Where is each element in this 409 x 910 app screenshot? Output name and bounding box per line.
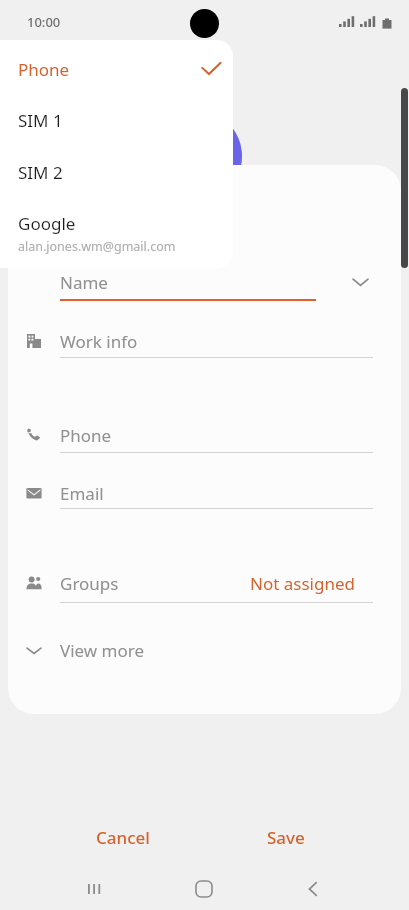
button[interactable]: Google bbox=[0, 196, 233, 268]
button[interactable]: SIM 2 bbox=[0, 144, 233, 196]
staticText: SIM 1 bbox=[18, 109, 63, 132]
staticText: View more bbox=[60, 639, 145, 662]
staticText: SIM 2 bbox=[18, 161, 63, 184]
button[interactable]: Home bbox=[181, 866, 227, 910]
staticText: Groups bbox=[60, 572, 119, 595]
staticText: Google bbox=[18, 212, 76, 235]
staticText: Not assigned bbox=[250, 572, 355, 595]
staticText: Email bbox=[60, 482, 104, 505]
button[interactable]: Phone bbox=[0, 40, 233, 92]
staticText: alan.jones.wm@gmail.com bbox=[18, 238, 176, 255]
staticText: Name bbox=[60, 271, 108, 294]
staticText: Save bbox=[267, 826, 305, 849]
button[interactable]: Phone bbox=[0, 419, 409, 451]
button[interactable]: Back bbox=[290, 866, 336, 910]
staticText: 10:00 bbox=[27, 13, 61, 31]
button[interactable]: SIM 1 bbox=[0, 92, 233, 144]
button[interactable]: Email bbox=[0, 477, 409, 509]
button[interactable]: Recent apps bbox=[72, 866, 118, 910]
button[interactable]: View more bbox=[0, 634, 260, 666]
staticText: Cancel bbox=[96, 826, 150, 849]
staticText: Phone bbox=[60, 424, 112, 447]
button[interactable]: Save bbox=[237, 818, 335, 856]
button[interactable]: Work info bbox=[0, 325, 409, 357]
button[interactable]: Cancel bbox=[70, 818, 176, 856]
staticText: Phone bbox=[18, 58, 70, 81]
button[interactable]: Expand name bbox=[344, 266, 376, 298]
button[interactable]: Groups bbox=[0, 568, 409, 598]
staticText: Work info bbox=[60, 330, 138, 353]
